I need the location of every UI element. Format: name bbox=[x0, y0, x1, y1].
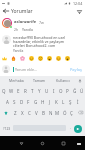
button[interactable]: Emoji bbox=[27, 54, 36, 62]
staticText: 7w bbox=[39, 20, 44, 25]
button[interactable]: C bbox=[26, 107, 33, 118]
staticText: Yorum ekle... bbox=[15, 67, 37, 72]
button[interactable]: ?123 bbox=[1, 125, 12, 131]
button[interactable]: Send bbox=[74, 125, 82, 133]
staticText: R bbox=[24, 88, 27, 94]
staticText: Z bbox=[14, 110, 17, 116]
button[interactable]: M bbox=[54, 107, 61, 118]
button[interactable]: S bbox=[11, 96, 18, 107]
button[interactable]: U bbox=[43, 85, 50, 96]
staticText: A bbox=[6, 99, 9, 105]
button[interactable]: Emoji bbox=[45, 54, 54, 62]
button[interactable]: T bbox=[29, 85, 36, 96]
staticText: İ bbox=[77, 99, 79, 105]
staticText: Ç bbox=[70, 110, 73, 116]
button[interactable]: F bbox=[25, 96, 32, 107]
staticText: L bbox=[62, 99, 65, 105]
staticText: C bbox=[28, 110, 31, 116]
button[interactable]: Voice input bbox=[74, 76, 85, 85]
button[interactable]: B bbox=[40, 107, 47, 118]
button[interactable]: G bbox=[32, 96, 39, 107]
staticText: F bbox=[27, 99, 30, 105]
button[interactable]: Hide keyboard bbox=[74, 139, 83, 148]
button[interactable]: W bbox=[8, 85, 15, 96]
button[interactable]: H bbox=[39, 96, 46, 107]
button[interactable]: Back bbox=[0, 6, 11, 16]
button[interactable]: İ bbox=[74, 96, 81, 107]
staticText: O bbox=[59, 88, 63, 94]
button[interactable]: D bbox=[18, 96, 25, 107]
button[interactable]: I bbox=[50, 85, 57, 96]
staticText: Ü bbox=[80, 88, 84, 94]
staticText: aslanzarife bbox=[14, 19, 37, 25]
button[interactable]: J bbox=[46, 96, 53, 107]
button[interactable]: Q bbox=[0, 85, 8, 96]
staticText: Yanıtla bbox=[13, 49, 24, 53]
button[interactable]: Y bbox=[36, 85, 43, 96]
staticText: X bbox=[21, 110, 24, 116]
staticText: H bbox=[41, 99, 45, 105]
button[interactable]: Merhaba bbox=[4, 76, 28, 85]
button[interactable]: Emoji bbox=[0, 54, 9, 62]
button[interactable]: Ğ bbox=[71, 85, 78, 96]
button[interactable]: Tamam bbox=[28, 76, 51, 85]
staticText: Yanıtla bbox=[22, 27, 33, 32]
button[interactable]: Home bbox=[37, 138, 47, 148]
button[interactable]: Emoji bbox=[63, 54, 72, 62]
button[interactable]: Share bbox=[73, 6, 85, 16]
staticText: G bbox=[34, 99, 38, 105]
staticText: Paylaş bbox=[70, 67, 82, 72]
button[interactable]: Ö bbox=[61, 107, 68, 118]
staticText: 12:04 bbox=[73, 1, 83, 6]
button[interactable]: Emoji bbox=[36, 54, 45, 62]
button[interactable]: Back bbox=[16, 138, 26, 148]
staticText: ?123 bbox=[3, 126, 11, 131]
staticText: N bbox=[49, 110, 53, 116]
staticText: V bbox=[35, 110, 38, 116]
button[interactable]: E bbox=[15, 85, 22, 96]
button[interactable]: Emoji bbox=[9, 54, 18, 62]
staticText: B bbox=[42, 110, 45, 116]
button[interactable]: . bbox=[67, 125, 74, 131]
button[interactable]: Recents bbox=[58, 138, 68, 148]
button[interactable]: Backspace bbox=[75, 107, 85, 118]
staticText: D bbox=[20, 99, 24, 105]
staticText: I bbox=[53, 88, 55, 94]
staticText: Tamam bbox=[33, 78, 46, 83]
button[interactable]: X bbox=[19, 107, 26, 118]
staticText: Ğ bbox=[73, 88, 77, 94]
staticText: K bbox=[55, 99, 58, 105]
staticText: T bbox=[31, 88, 34, 94]
button[interactable]: Z bbox=[11, 107, 19, 118]
button[interactable]: K bbox=[53, 96, 60, 107]
staticText: Merhaba bbox=[9, 78, 24, 83]
staticText: Ö bbox=[63, 110, 67, 116]
staticText: J bbox=[49, 99, 51, 105]
staticText: E bbox=[17, 88, 20, 94]
button[interactable]: L bbox=[60, 96, 67, 107]
button[interactable]: Ş bbox=[67, 96, 74, 107]
button[interactable]: Emoji bbox=[54, 54, 63, 62]
button[interactable]: Kullanıcı bbox=[51, 76, 74, 85]
button[interactable]: V bbox=[33, 107, 40, 118]
staticText: P bbox=[66, 88, 69, 94]
staticText: U bbox=[45, 88, 49, 94]
staticText: necedurff90 Bonuthood en uzel hazardnlar… bbox=[13, 35, 70, 48]
button[interactable]: N bbox=[47, 107, 54, 118]
staticText: Q bbox=[2, 88, 6, 94]
staticText: M bbox=[55, 110, 60, 116]
staticText: W bbox=[9, 88, 14, 94]
staticText: . bbox=[70, 125, 72, 131]
button[interactable]: O bbox=[57, 85, 64, 96]
button[interactable]: Emoji bbox=[18, 54, 27, 62]
button[interactable]: Paylaş bbox=[69, 65, 83, 74]
button[interactable]: Ü bbox=[78, 85, 85, 96]
button[interactable]: R bbox=[22, 85, 29, 96]
button[interactable]: A bbox=[4, 96, 11, 107]
button[interactable]: P bbox=[64, 85, 71, 96]
button[interactable]: Shift bbox=[0, 107, 11, 118]
staticText: Ş bbox=[69, 99, 72, 105]
button[interactable]: Ç bbox=[68, 107, 75, 118]
staticText: Yorumlar bbox=[11, 8, 33, 15]
